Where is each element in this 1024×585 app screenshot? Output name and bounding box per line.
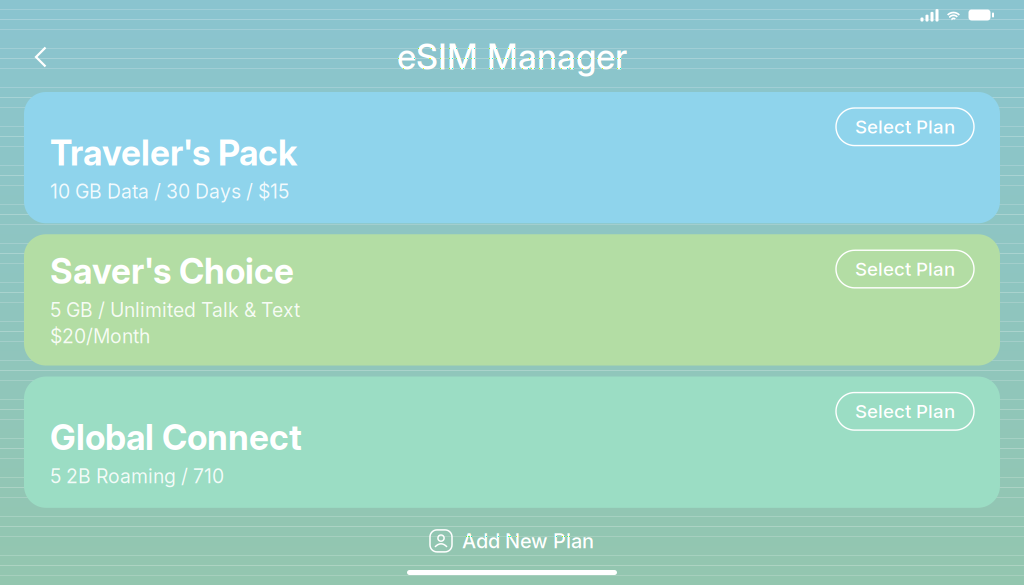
button[interactable]: Select Plan: [836, 250, 974, 288]
button[interactable]: Add New Plan: [416, 522, 608, 560]
staticText: 5 2B Roaming / 710: [50, 464, 224, 488]
staticText: 10 GB Data / 30 Days / $15: [50, 180, 289, 203]
staticText: $20/Month: [50, 325, 150, 348]
staticText: Traveler's Pack: [50, 132, 297, 174]
staticText: Select Plan: [855, 115, 955, 138]
staticText: Saver's Choice: [50, 250, 294, 292]
staticText: 5 GB / Unlimited Talk & Text: [50, 298, 300, 322]
staticText: Select Plan: [855, 258, 955, 280]
staticText: Global Connect: [50, 416, 302, 458]
staticText: Select Plan: [855, 400, 955, 423]
button[interactable]: Traveler's Pack: [24, 92, 1000, 223]
button[interactable]: Global Connect: [24, 376, 1000, 508]
button[interactable]: Select Plan: [836, 392, 974, 430]
button[interactable]: Saver's Choice: [24, 234, 1000, 366]
button[interactable]: Back: [18, 34, 64, 80]
staticText: eSIM Manager: [397, 36, 627, 78]
button[interactable]: Select Plan: [836, 108, 974, 146]
staticText: Add New Plan: [462, 529, 594, 553]
